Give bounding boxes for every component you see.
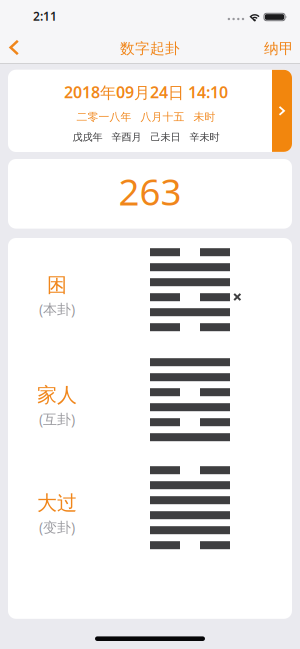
- staticText: (互卦): [39, 409, 75, 428]
- staticText: 数字起卦: [120, 39, 180, 57]
- staticText: 大过: [37, 491, 77, 515]
- staticText: 二零一八年 八月十五 未时: [76, 110, 215, 124]
- button[interactable]: 2018年09月24日 14:10: [8, 70, 292, 152]
- staticText: 2:11: [33, 8, 57, 24]
- staticText: 困: [47, 273, 67, 297]
- staticText: 纳甲: [264, 39, 294, 57]
- staticText: 戊戌年 辛酉月 己未日 辛未时: [72, 131, 219, 143]
- staticText: 263: [118, 166, 181, 216]
- staticText: 家人: [37, 383, 77, 407]
- staticText: (本卦): [39, 299, 75, 318]
- button[interactable]: 返回: [0, 28, 30, 63]
- staticText: 2018年09月24日 14:10: [64, 81, 228, 103]
- button[interactable]: 纳甲: [254, 28, 300, 63]
- staticText: (变卦): [39, 517, 75, 536]
